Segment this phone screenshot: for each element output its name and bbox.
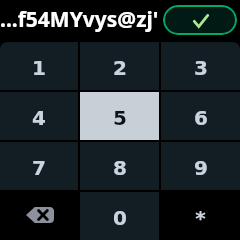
button[interactable]: 0 [80, 192, 159, 240]
button[interactable]: 7 [0, 142, 78, 190]
button[interactable]: Confirm [163, 5, 237, 35]
staticText: 1 [32, 56, 46, 79]
button[interactable]: 8 [80, 142, 159, 190]
staticText: ...f54MYvys@zj' [0, 5, 159, 34]
button[interactable]: * [161, 192, 240, 240]
staticText: 6 [194, 106, 208, 129]
staticText: 9 [194, 156, 208, 179]
staticText: 8 [113, 156, 127, 179]
button[interactable]: 3 [161, 42, 240, 90]
staticText: 3 [194, 56, 208, 79]
staticText: 0 [113, 206, 127, 229]
button[interactable]: ...f54MYvys@zj' [0, 0, 162, 42]
button[interactable]: 9 [161, 142, 240, 190]
button[interactable]: 2 [80, 42, 159, 90]
button[interactable]: 5 [80, 92, 159, 140]
staticText: 2 [113, 56, 127, 79]
button[interactable]: 6 [161, 92, 240, 140]
staticText: 5 [113, 106, 127, 129]
staticText: * [195, 206, 206, 229]
button[interactable]: 4 [0, 92, 78, 140]
staticText: 7 [32, 156, 46, 179]
button[interactable]: Backspace [0, 192, 78, 240]
button[interactable]: 1 [0, 42, 78, 90]
staticText: 4 [32, 106, 46, 129]
